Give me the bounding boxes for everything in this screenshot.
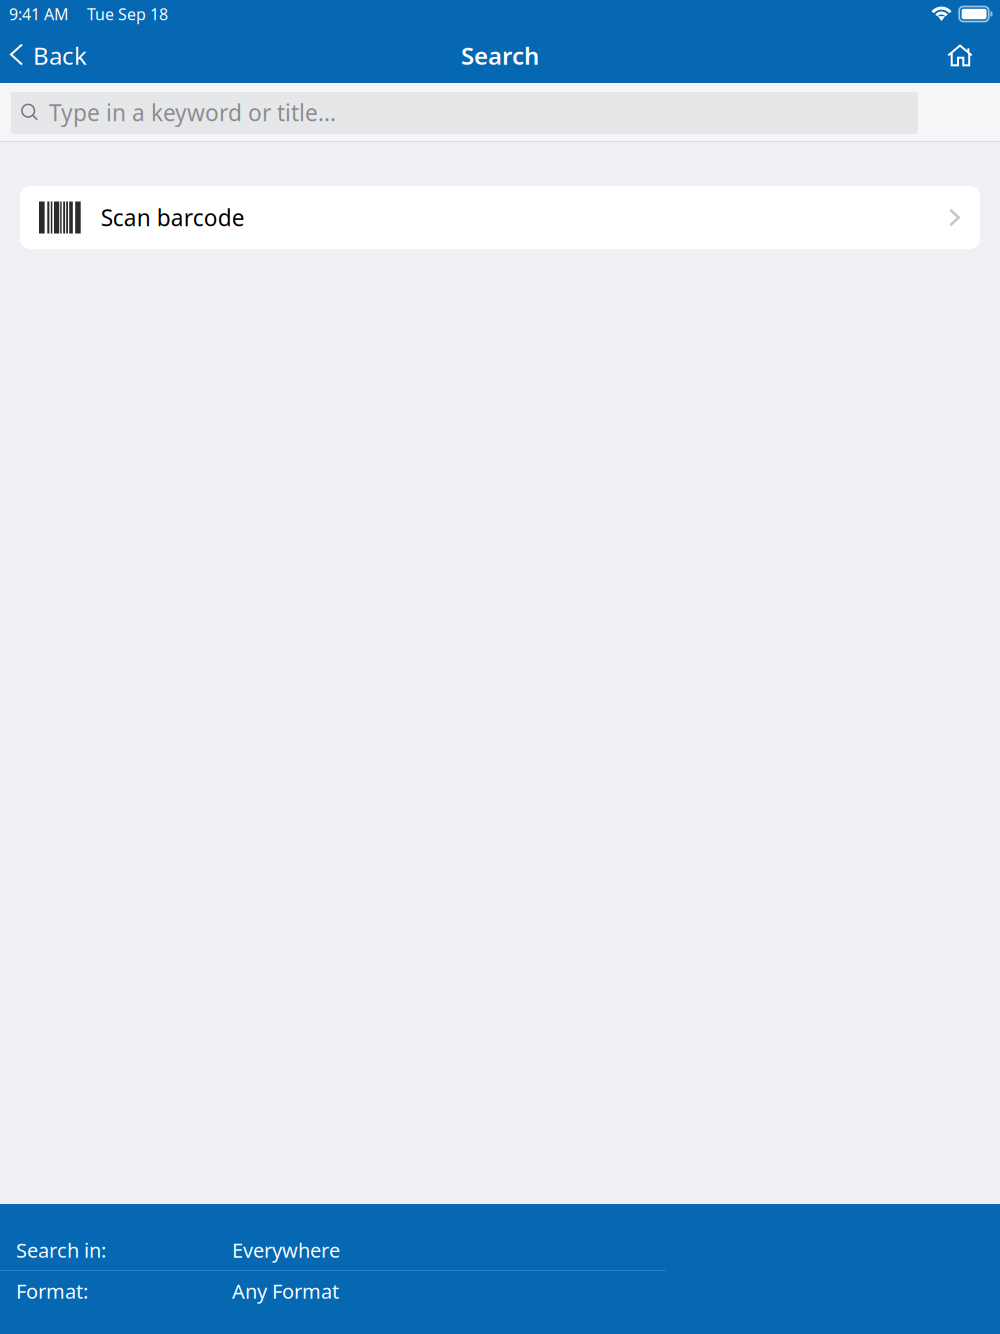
staticText: Tue Sep 18 (87, 3, 168, 25)
staticText: Search in: (16, 1237, 106, 1263)
staticText: Back (33, 40, 87, 71)
button[interactable]: Back (0, 28, 101, 83)
button[interactable]: Home (928, 28, 1000, 83)
button[interactable]: Format: Any Format (0, 1271, 1000, 1311)
staticText: Everywhere (232, 1237, 340, 1263)
staticText: Search (461, 40, 539, 71)
button[interactable]: Scan barcode (20, 186, 980, 249)
button[interactable]: Search in: Everywhere (0, 1230, 1000, 1271)
staticText: Scan barcode (101, 202, 245, 232)
staticText: 9:41 AM (9, 3, 69, 25)
staticText: Type in a keyword or title... (49, 97, 336, 127)
staticText: Any Format (232, 1278, 339, 1304)
button[interactable]: Type in a keyword or title... (11, 92, 918, 134)
staticText: Format: (16, 1278, 88, 1304)
